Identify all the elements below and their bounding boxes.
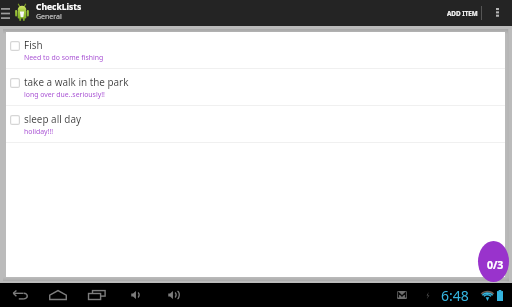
button[interactable]: Volume up [163, 283, 185, 307]
staticText: Fish [24, 38, 43, 51]
staticText: 6:48 [441, 286, 469, 305]
button[interactable]: Navigation menu [0, 0, 13, 26]
button[interactable]: sleep all day [6, 106, 505, 143]
staticText: Need to do some fishing [24, 53, 104, 62]
staticText: 0/3 [487, 258, 504, 272]
button[interactable]: Home [47, 283, 69, 307]
button[interactable]: ADD ITEM [438, 0, 478, 26]
button[interactable]: Fish [6, 32, 505, 69]
staticText: ADD ITEM [447, 9, 478, 18]
staticText: CheckLists [36, 1, 82, 13]
button[interactable]: Volume down [126, 283, 148, 307]
button[interactable]: Back [9, 283, 31, 307]
staticText: General [36, 12, 62, 22]
button[interactable]: Recent apps [86, 283, 108, 307]
button[interactable]: Completed 0 of 3 [478, 241, 509, 282]
button[interactable]: CheckLists app icon [12, 3, 32, 23]
staticText: holiday!!! [24, 127, 54, 136]
staticText: long over due..seriously!! [24, 90, 105, 99]
staticText: take a walk in the park [24, 75, 129, 88]
button[interactable]: More options [482, 0, 512, 26]
button[interactable]: take a walk in the park [6, 69, 505, 106]
staticText: sleep all day [24, 112, 81, 125]
